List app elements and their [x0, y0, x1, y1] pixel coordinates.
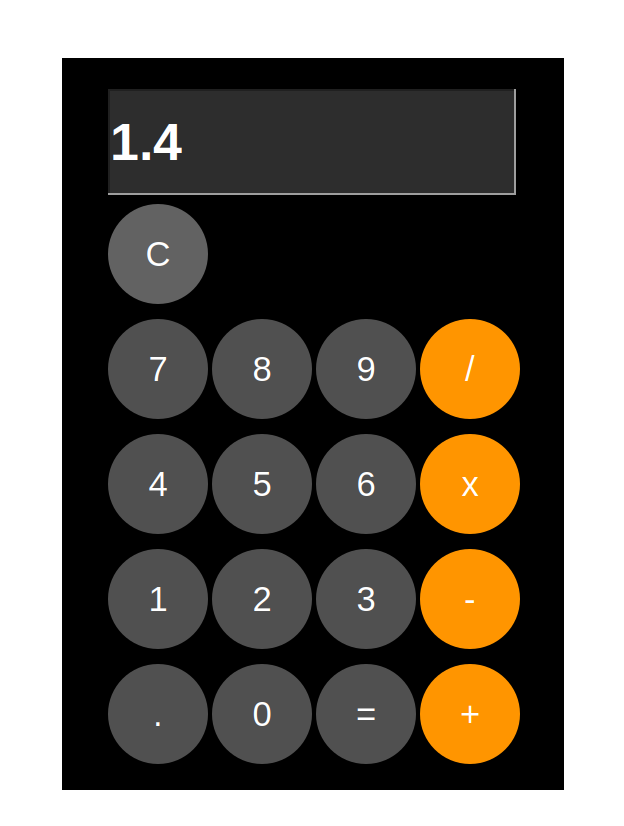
staticText: 0 — [252, 695, 271, 733]
button[interactable]: Plus — [420, 664, 520, 764]
button[interactable]: 0 — [212, 664, 312, 764]
staticText: 2 — [252, 580, 271, 618]
button[interactable]: Clear — [108, 204, 208, 304]
staticText: . — [153, 695, 163, 733]
staticText: 1.4 — [110, 113, 182, 171]
button[interactable]: 8 — [212, 319, 312, 419]
button[interactable]: Divide — [420, 319, 520, 419]
button[interactable]: Decimal point — [108, 664, 208, 764]
staticText: 4 — [148, 465, 167, 503]
staticText: 9 — [356, 350, 375, 388]
button[interactable]: 6 — [316, 434, 416, 534]
staticText: x — [461, 465, 478, 503]
staticText: 3 — [356, 580, 375, 618]
staticText: 6 — [356, 465, 375, 503]
staticText: 1 — [148, 580, 167, 618]
staticText: 8 — [252, 350, 271, 388]
staticText: / — [465, 350, 475, 388]
button[interactable]: 9 — [316, 319, 416, 419]
staticText: + — [460, 695, 480, 733]
button[interactable]: 5 — [212, 434, 312, 534]
staticText: - — [464, 580, 476, 618]
button[interactable]: Multiply — [420, 434, 520, 534]
button[interactable]: 2 — [212, 549, 312, 649]
staticText: 5 — [252, 465, 271, 503]
button[interactable]: 7 — [108, 319, 208, 419]
staticText: 7 — [148, 350, 167, 388]
staticText: C — [145, 235, 170, 273]
button[interactable]: Minus — [420, 549, 520, 649]
button[interactable]: Equals — [316, 664, 416, 764]
staticText: = — [356, 695, 376, 733]
button[interactable]: 1 — [108, 549, 208, 649]
button[interactable]: 4 — [108, 434, 208, 534]
button[interactable]: 3 — [316, 549, 416, 649]
